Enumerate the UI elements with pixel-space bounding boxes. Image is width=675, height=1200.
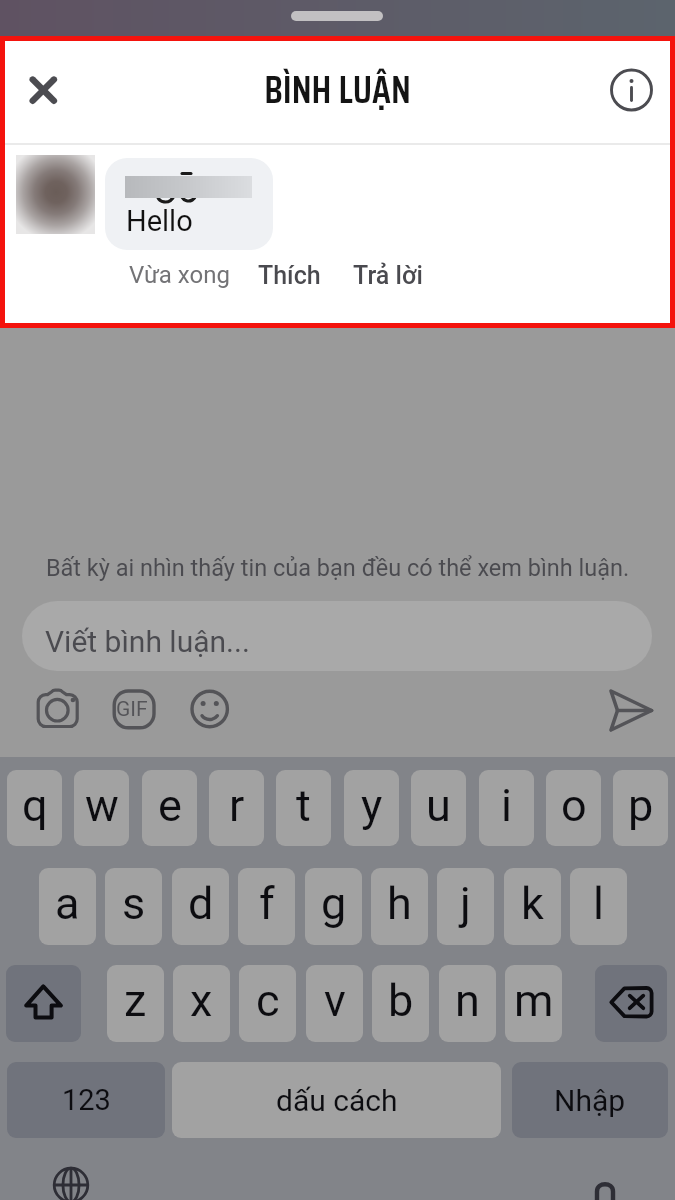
button[interactable]: e [142, 770, 197, 846]
staticText: q [22, 779, 48, 832]
staticText: y [361, 779, 383, 832]
staticText: b [388, 974, 414, 1027]
staticText: i [501, 779, 512, 832]
button[interactable]: h [371, 868, 428, 945]
staticText: Nhập [554, 1083, 626, 1118]
button[interactable]: q [7, 770, 62, 846]
button[interactable]: GIF [104, 681, 162, 739]
button[interactable]: b [372, 965, 429, 1042]
staticText: 123 [62, 1083, 111, 1117]
staticText: Hello [126, 204, 193, 238]
staticText: p [628, 779, 654, 832]
staticText: n [455, 974, 480, 1027]
button[interactable]: u [411, 770, 466, 846]
staticText: t [296, 779, 311, 832]
button[interactable]: z [107, 965, 164, 1042]
staticText: Bất kỳ ai nhìn thấy tin của bạn đều có t… [0, 554, 675, 582]
staticText: m [514, 974, 554, 1027]
button[interactable]: f [238, 868, 295, 945]
staticText: BÌNH LUẬN [0, 60, 675, 120]
button[interactable]: g [305, 868, 362, 945]
button[interactable]: d [172, 868, 229, 945]
button[interactable]: Keyboard settings [585, 1165, 625, 1200]
button[interactable]: y [344, 770, 399, 846]
staticText: f [259, 877, 275, 930]
button[interactable]: l [570, 868, 627, 945]
button[interactable]: Change keyboard language [51, 1165, 91, 1200]
button[interactable]: 123 [7, 1062, 165, 1138]
staticText: r [229, 779, 245, 832]
button[interactable]: Trả lời [353, 261, 423, 290]
button[interactable]: v [306, 965, 363, 1042]
staticText: w [85, 779, 119, 832]
button[interactable]: Vừa xong [129, 261, 230, 289]
button[interactable]: c [239, 965, 296, 1042]
button[interactable]: dấu cách [172, 1062, 501, 1138]
button[interactable]: n [439, 965, 496, 1042]
staticText: u [426, 779, 451, 832]
staticText: dấu cách [276, 1083, 398, 1118]
button[interactable]: j [437, 868, 494, 945]
staticText: j [460, 877, 471, 930]
button[interactable]: k [504, 868, 561, 945]
staticText: a [55, 877, 80, 930]
staticText: Viết bình luận... [45, 624, 250, 659]
button[interactable]: Send [603, 681, 661, 739]
staticText: v [324, 974, 346, 1027]
staticText: z [124, 974, 147, 1027]
staticText: x [190, 974, 213, 1027]
button[interactable]: Close [17, 60, 69, 112]
button[interactable]: i [479, 770, 534, 846]
staticText: c [256, 974, 280, 1027]
button[interactable]: w [74, 770, 129, 846]
button[interactable]: r [209, 770, 264, 846]
staticText: l [593, 877, 604, 930]
button[interactable]: m [505, 965, 562, 1042]
staticText: s [122, 877, 146, 930]
button[interactable]: a [39, 868, 96, 945]
button[interactable]: Backspace [595, 965, 667, 1042]
staticText: k [521, 877, 544, 930]
button[interactable]: Camera [29, 681, 87, 739]
staticText: h [387, 877, 412, 930]
staticText: GIF [116, 697, 148, 722]
button[interactable]: Emoji [181, 681, 239, 739]
button[interactable]: o [546, 770, 601, 846]
button[interactable]: x [173, 965, 230, 1042]
staticText: d [188, 877, 214, 930]
button[interactable]: Shift [6, 965, 81, 1042]
button[interactable]: Nhập [512, 1062, 668, 1138]
button[interactable]: s [105, 868, 162, 945]
button[interactable]: p [613, 770, 668, 846]
button[interactable]: Thích [258, 261, 321, 290]
staticText: g [321, 877, 347, 930]
staticText: o [561, 779, 587, 832]
button[interactable]: Viết bình luận... [22, 601, 652, 671]
staticText: e [158, 779, 182, 832]
button[interactable]: Information [605, 63, 657, 115]
button[interactable]: t [276, 770, 331, 846]
